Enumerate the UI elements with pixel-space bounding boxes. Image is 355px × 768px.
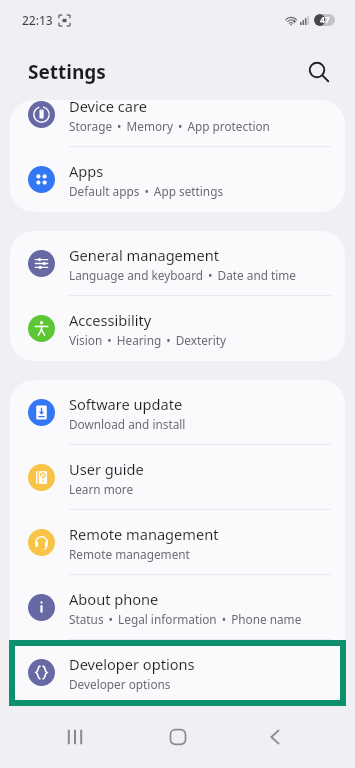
button[interactable]: Device care (10, 100, 345, 147)
staticText: Remote management (69, 546, 190, 562)
button[interactable]: About phone (10, 575, 345, 640)
staticText: 47 (320, 14, 330, 26)
staticText: General management (69, 245, 219, 265)
staticText: Vision • Hearing • Dexterity (69, 332, 227, 348)
staticText: User guide (69, 459, 144, 479)
staticText: Download and install (69, 416, 186, 432)
button[interactable]: Recent apps (53, 715, 97, 759)
button[interactable]: Accessibility (10, 296, 345, 361)
staticText: Developer options (69, 654, 195, 674)
staticText: Status • Legal information • Phone name (69, 611, 302, 627)
button[interactable]: Software update (10, 380, 345, 445)
staticText: Developer options (69, 676, 171, 692)
button[interactable]: General management (10, 231, 345, 296)
button[interactable]: Apps (10, 147, 345, 212)
staticText: Software update (69, 394, 183, 414)
staticText: Settings (28, 59, 106, 85)
staticText: Accessibility (69, 310, 152, 330)
staticText: Language and keyboard • Date and time (69, 267, 297, 283)
button[interactable]: User guide (10, 445, 345, 510)
button[interactable]: Back (253, 715, 297, 759)
staticText: Remote management (69, 524, 219, 544)
staticText: Apps (69, 161, 104, 181)
button[interactable]: Remote management (10, 510, 345, 575)
button[interactable]: Search (301, 54, 337, 90)
button[interactable]: Home (156, 715, 200, 759)
staticText: Storage • Memory • App protection (69, 118, 270, 134)
staticText: Learn more (69, 481, 134, 497)
staticText: Device care (69, 100, 147, 116)
staticText: 22:13 (22, 12, 53, 28)
staticText: About phone (69, 589, 159, 609)
button[interactable]: Developer options (10, 640, 345, 705)
staticText: Default apps • App settings (69, 183, 224, 199)
